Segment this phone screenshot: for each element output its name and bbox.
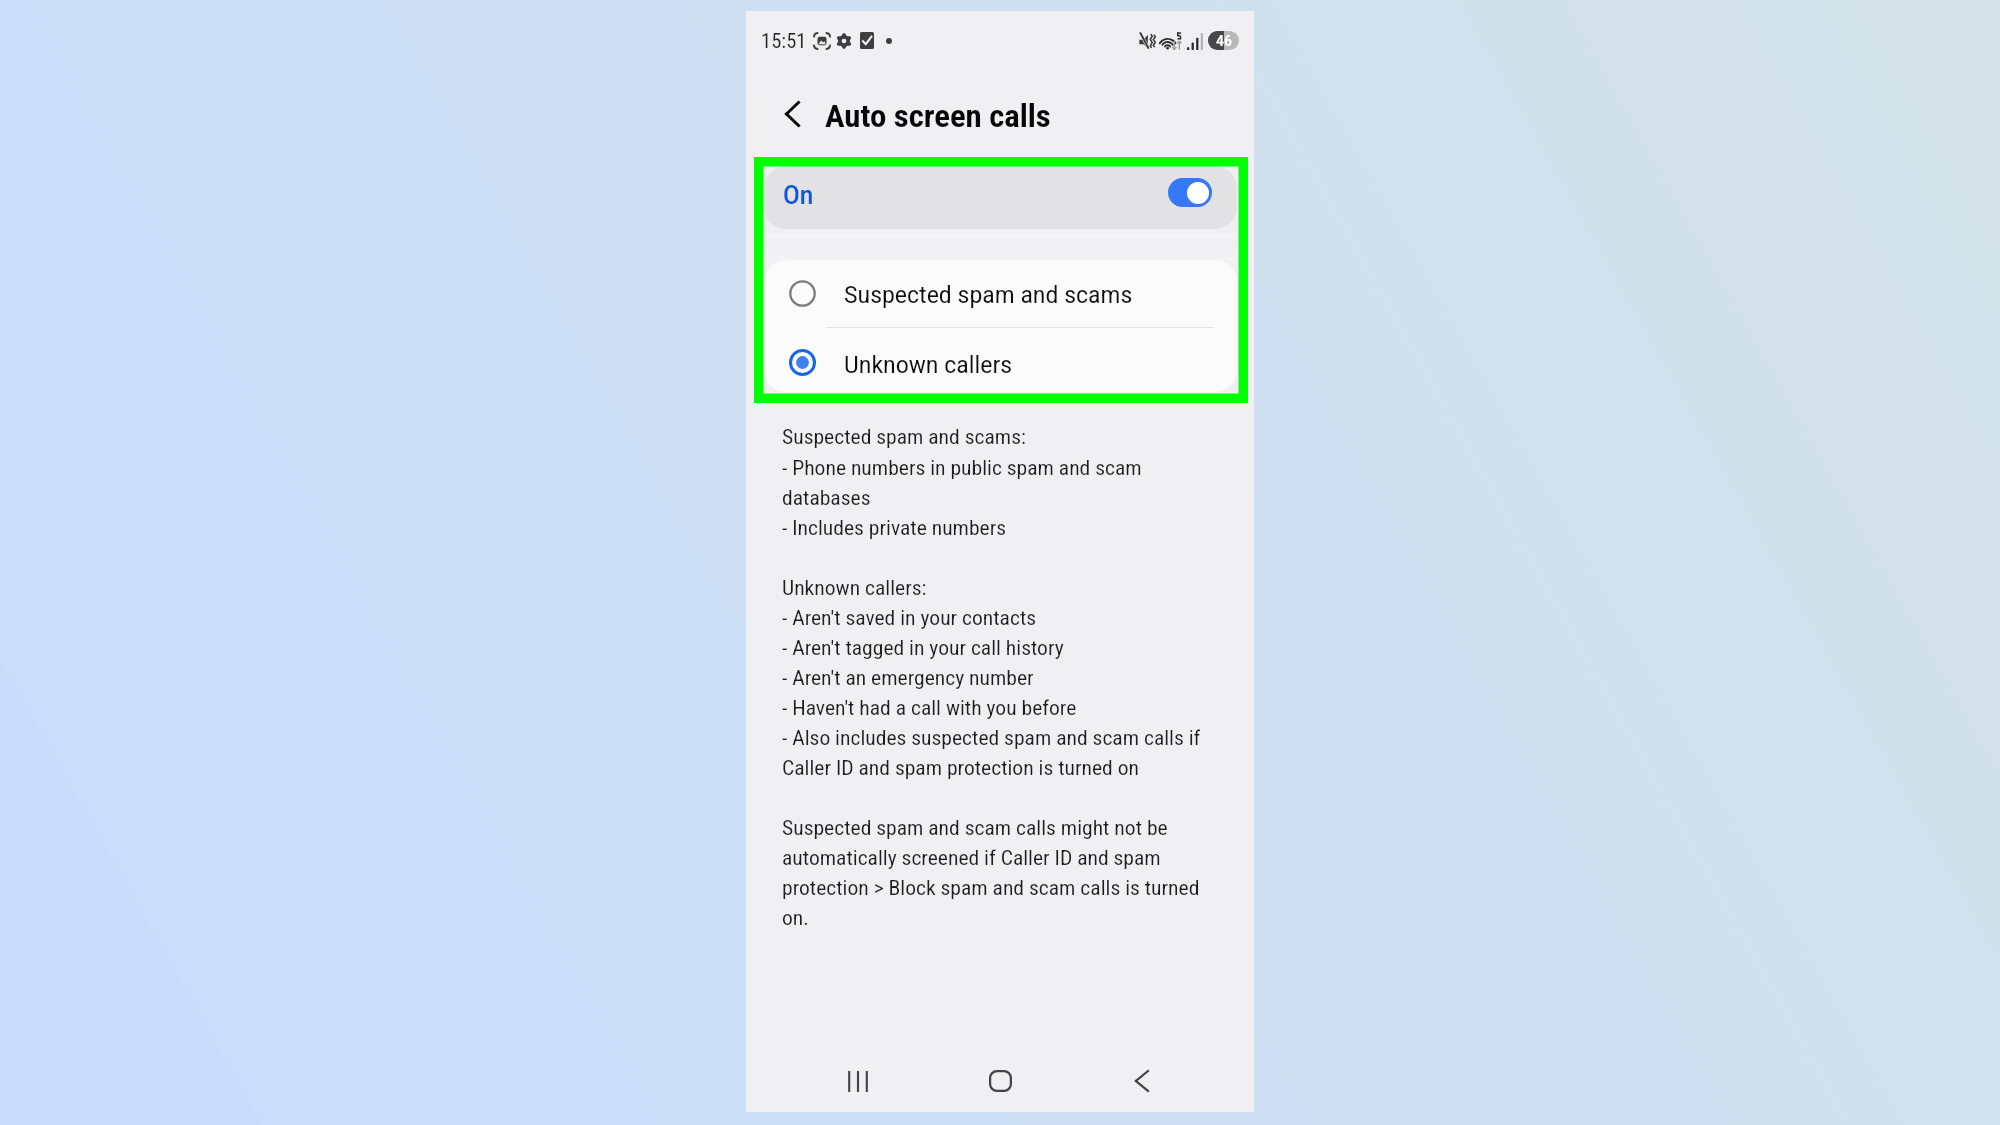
button[interactable]: Back [1108, 1047, 1176, 1115]
button[interactable]: Suspected spam and scams [764, 260, 1237, 327]
staticText: Suspected spam and scams: - Phone number… [782, 425, 1220, 930]
button[interactable]: Unknown callers [764, 330, 1237, 392]
button[interactable]: On [764, 166, 1237, 229]
staticText: Suspected spam and scams [844, 281, 1133, 309]
staticText: 15:51 [761, 29, 807, 53]
button[interactable]: Home [966, 1047, 1034, 1115]
button[interactable]: Recent apps [824, 1047, 892, 1115]
button[interactable]: Navigate up [773, 95, 811, 133]
staticText: On [783, 180, 814, 210]
staticText: Unknown callers [844, 351, 1013, 379]
staticText: 46 [1216, 32, 1232, 50]
staticText: Auto screen calls [825, 98, 1051, 135]
